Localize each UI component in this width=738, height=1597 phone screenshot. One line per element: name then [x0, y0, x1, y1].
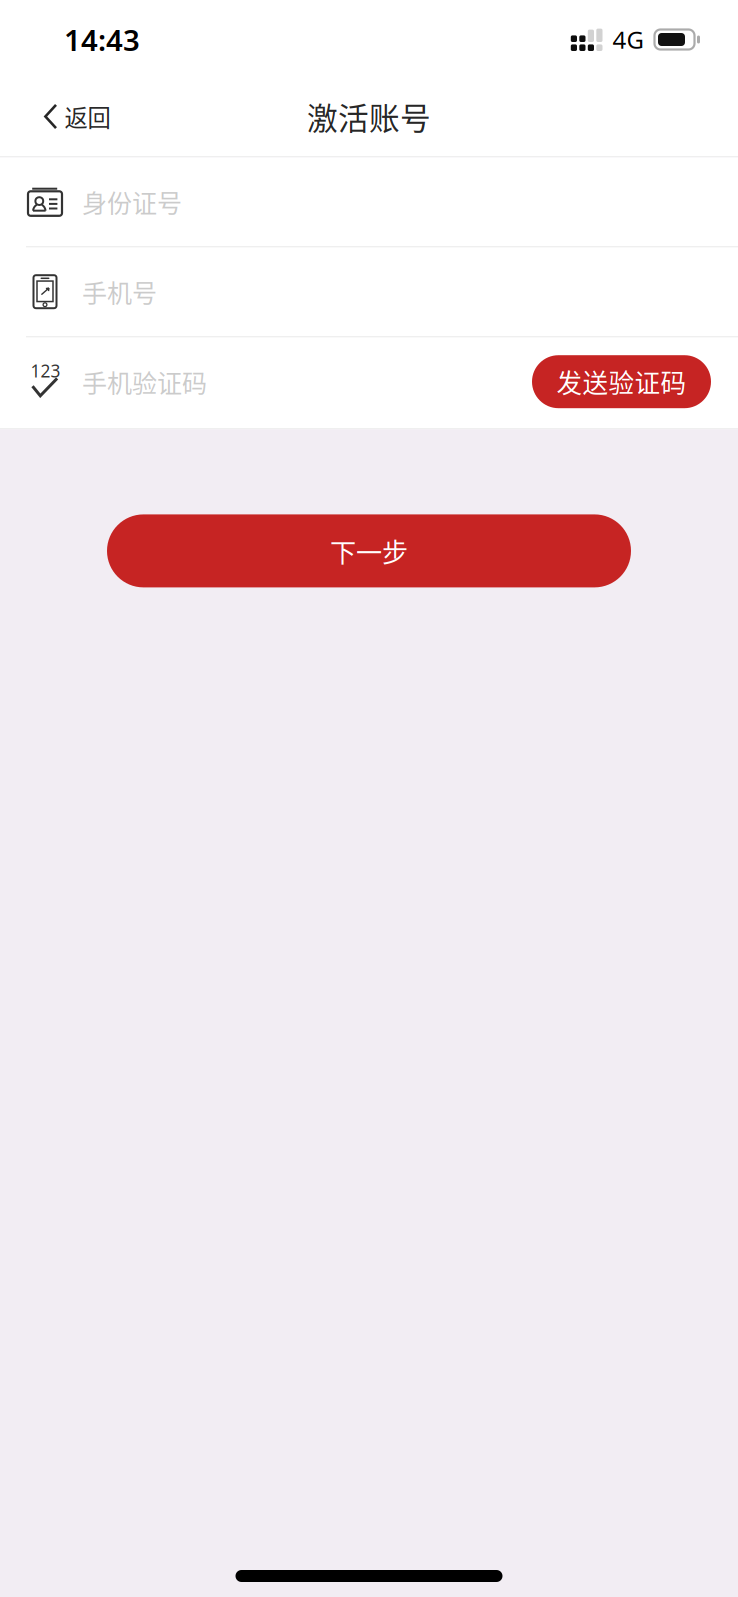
- staticText: 4G: [612, 24, 643, 55]
- staticText: 返回: [64, 100, 110, 133]
- button[interactable]: 下一步: [107, 514, 631, 587]
- button[interactable]: 返回: [0, 80, 128, 152]
- staticText: 发送验证码: [556, 363, 686, 400]
- staticText: 身份证号: [82, 184, 182, 220]
- staticText: 手机验证码: [82, 364, 207, 400]
- button[interactable]: 手机号: [0, 247, 738, 336]
- staticText: 下一步: [330, 532, 408, 570]
- staticText: 123: [30, 359, 60, 382]
- button[interactable]: 身份证号: [0, 157, 738, 246]
- button[interactable]: 发送验证码: [532, 355, 711, 408]
- button[interactable]: 手机验证码: [0, 337, 738, 426]
- staticText: 14:43: [64, 20, 140, 59]
- staticText: 激活账号: [307, 94, 431, 139]
- staticText: 手机号: [82, 274, 157, 310]
